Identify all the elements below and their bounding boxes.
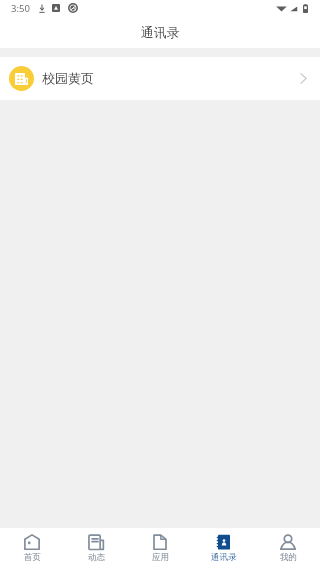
staticText: 应用	[152, 552, 169, 563]
button[interactable]: 校园黄页	[0, 57, 320, 100]
other: Open 校园黄页	[300, 73, 307, 84]
staticText: 3:50	[11, 2, 30, 15]
button[interactable]: 应用	[128, 528, 192, 568]
button[interactable]: 动态	[64, 528, 128, 568]
button[interactable]: 通讯录	[192, 528, 256, 568]
button[interactable]: 首页	[0, 528, 64, 568]
staticText: 首页	[24, 552, 41, 563]
button[interactable]: 我的	[256, 528, 320, 568]
staticText: 通讯录	[211, 552, 237, 563]
staticText: 通讯录	[141, 25, 180, 41]
staticText: 校园黄页	[42, 70, 94, 86]
staticText: 动态	[88, 552, 105, 563]
staticText: 我的	[280, 552, 297, 563]
